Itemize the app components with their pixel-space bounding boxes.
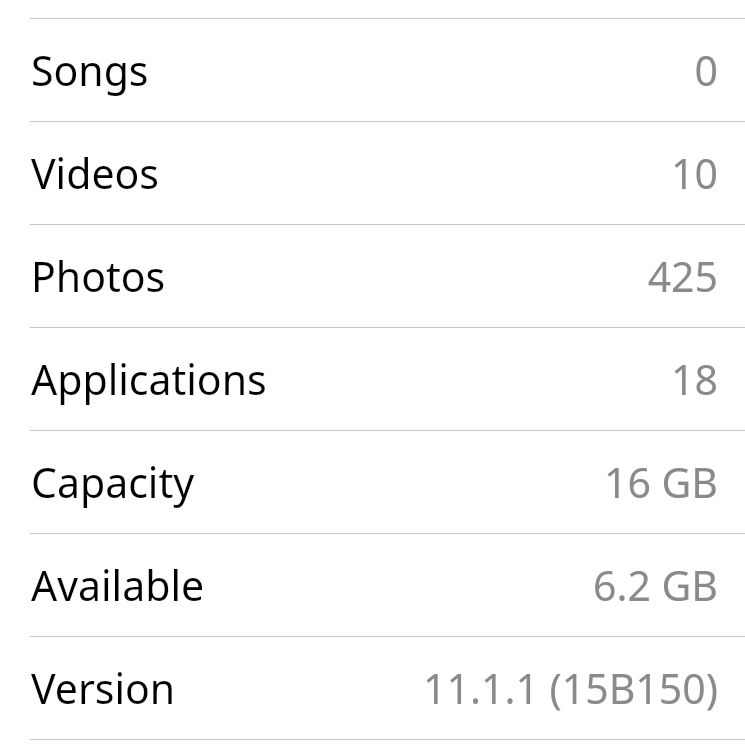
button[interactable]: Songs	[0, 19, 745, 121]
staticText: Videos	[31, 145, 159, 201]
button[interactable]: Videos	[0, 122, 745, 224]
staticText: 11.1.1 (15B150)	[423, 660, 718, 716]
staticText: Photos	[31, 248, 166, 304]
button[interactable]: Available	[0, 534, 745, 636]
button[interactable]: Capacity	[0, 431, 745, 533]
staticText: Version	[31, 660, 176, 716]
staticText: Songs	[31, 42, 149, 98]
button[interactable]: Version	[0, 637, 745, 739]
button[interactable]: Applications	[0, 328, 745, 430]
staticText: Capacity	[31, 454, 195, 510]
staticText: 18	[671, 351, 718, 407]
staticText: Available	[31, 557, 205, 613]
staticText: 425	[647, 248, 718, 304]
staticText: 0	[694, 42, 718, 98]
button[interactable]: Photos	[0, 225, 745, 327]
staticText: 16 GB	[603, 454, 718, 510]
staticText: Applications	[31, 351, 267, 407]
staticText: 10	[671, 145, 718, 201]
staticText: 6.2 GB	[592, 557, 718, 613]
